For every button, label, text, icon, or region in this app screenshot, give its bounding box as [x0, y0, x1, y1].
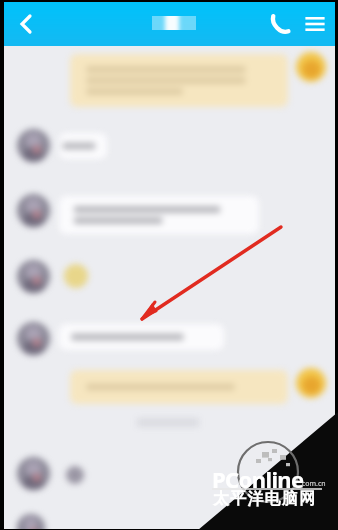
button[interactable]	[17, 260, 50, 293]
button[interactable]	[59, 196, 259, 234]
button[interactable]	[17, 514, 45, 529]
button[interactable]	[59, 324, 224, 350]
button[interactable]	[17, 457, 50, 490]
button[interactable]	[70, 370, 288, 404]
staticText: PConline	[212, 464, 304, 494]
button[interactable]	[296, 52, 326, 82]
button[interactable]	[70, 54, 288, 107]
button[interactable]: Menu	[302, 11, 328, 37]
button[interactable]	[59, 133, 107, 159]
button[interactable]	[296, 368, 326, 398]
button[interactable]	[64, 264, 88, 288]
button[interactable]: Back	[10, 8, 42, 40]
button[interactable]	[66, 466, 84, 484]
button[interactable]	[17, 194, 50, 227]
staticText: 太平洋电脑网	[213, 489, 317, 509]
button[interactable]	[17, 129, 50, 162]
staticText: .com.cn	[300, 479, 326, 489]
button[interactable]: Voice call	[266, 10, 294, 38]
button[interactable]	[17, 322, 50, 355]
